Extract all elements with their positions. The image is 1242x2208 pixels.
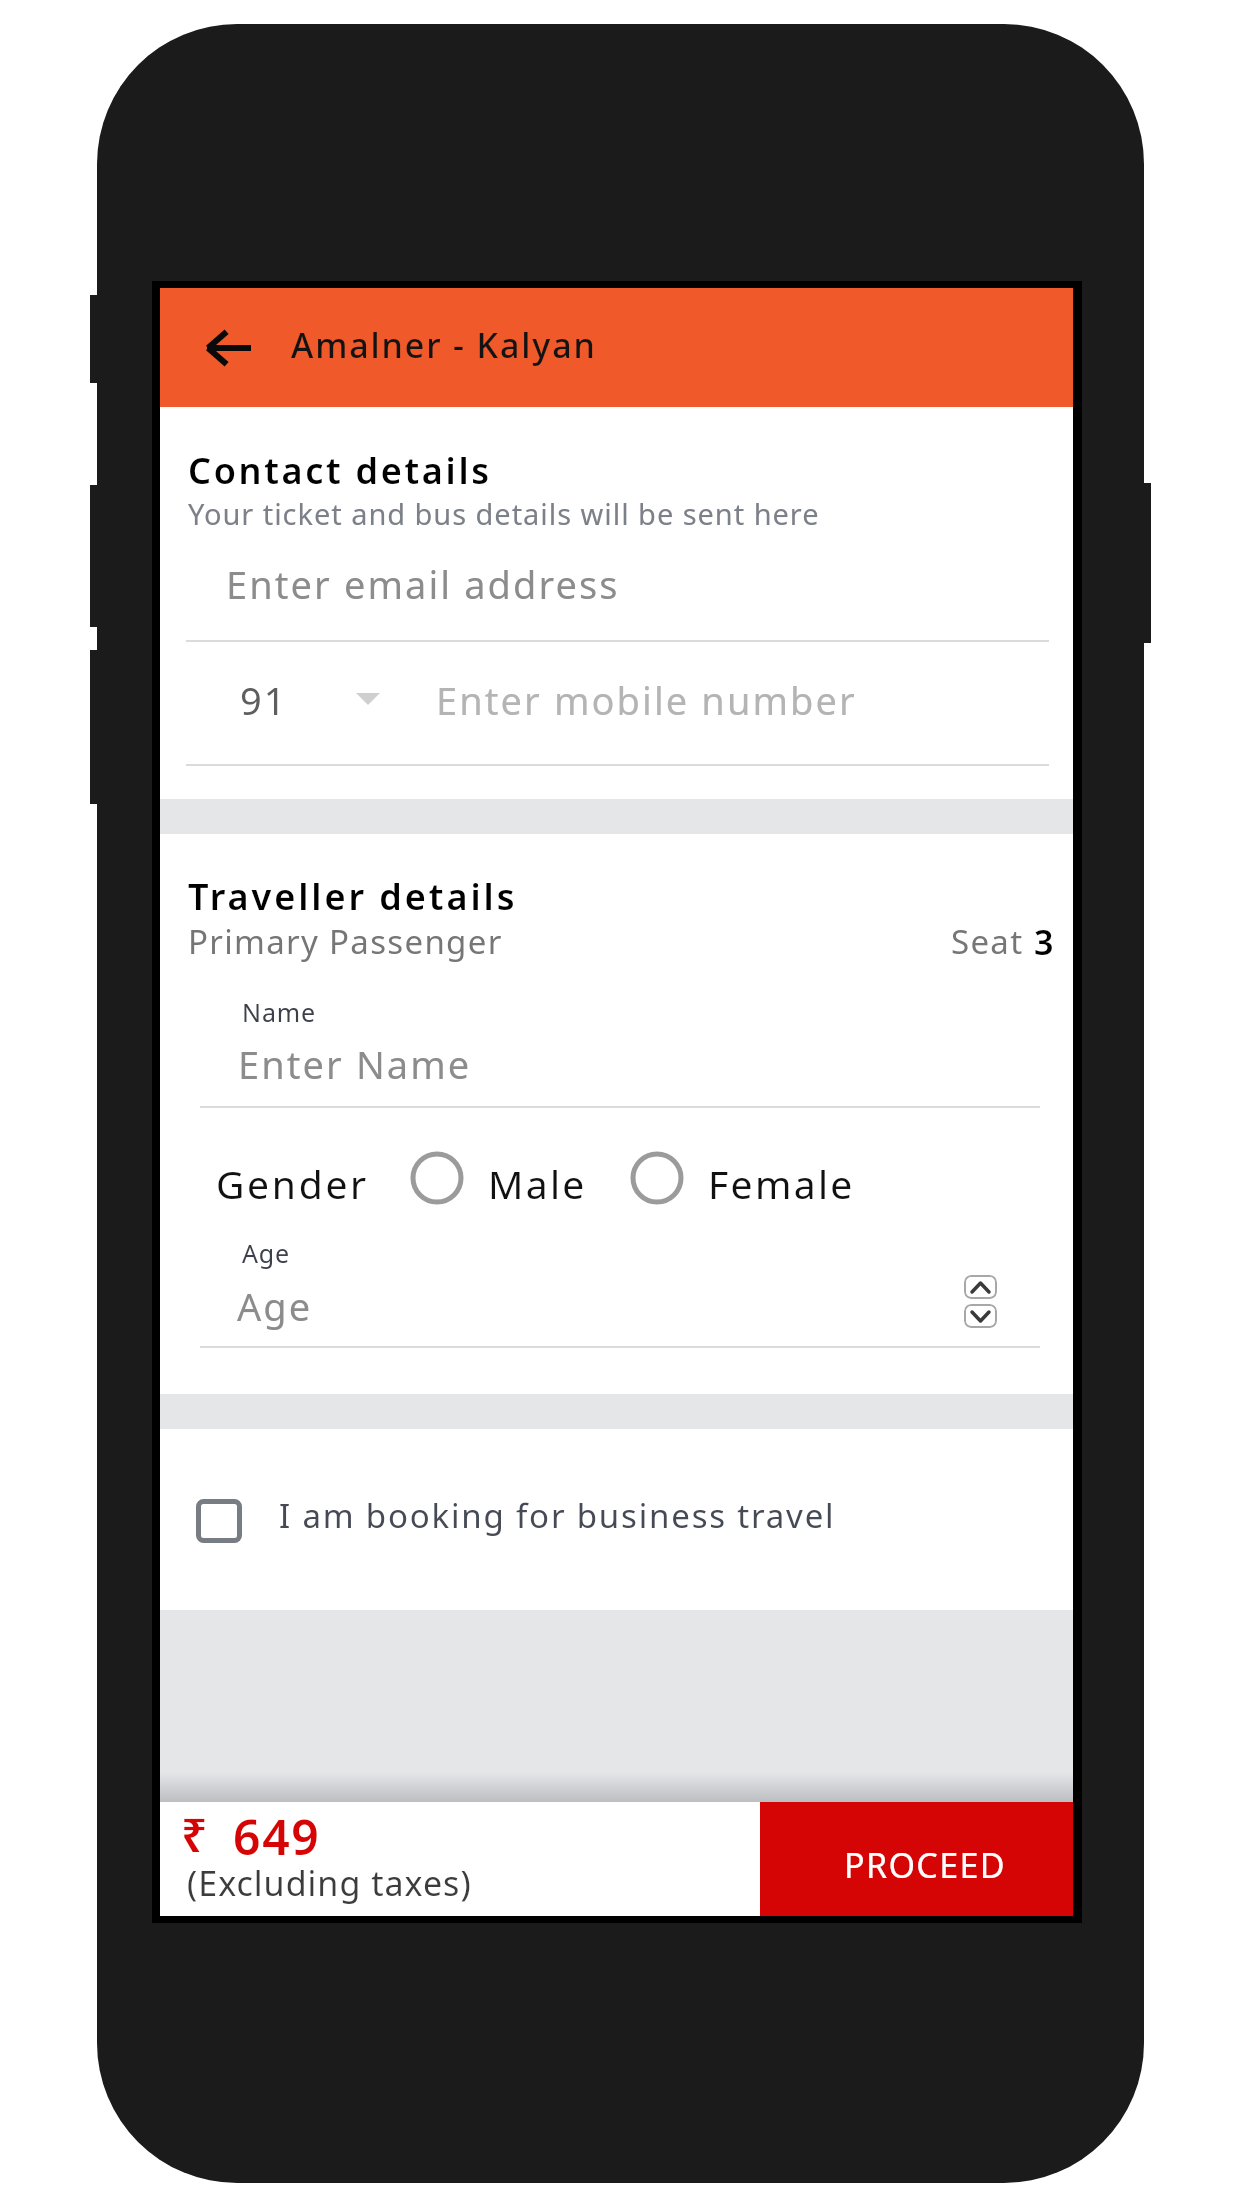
button[interactable]: Age bbox=[200, 1230, 1040, 1348]
staticText: PROCEED bbox=[844, 1842, 1006, 1888]
button[interactable]: Male bbox=[409, 1150, 465, 1206]
button[interactable]: Back bbox=[196, 316, 260, 380]
button[interactable]: Increase age bbox=[964, 1275, 997, 1299]
staticText: Enter Name bbox=[238, 1038, 472, 1090]
staticText: Traveller details bbox=[188, 872, 518, 921]
staticText: (Excluding taxes) bbox=[187, 1860, 472, 1906]
button[interactable]: Female bbox=[629, 1150, 685, 1206]
staticText: Name bbox=[242, 995, 317, 1029]
staticText: Seat bbox=[951, 919, 1034, 964]
staticText: Your ticket and bus details will be sent… bbox=[188, 494, 820, 533]
button[interactable]: PROCEED bbox=[760, 1802, 1073, 1916]
staticText: Contact details bbox=[188, 446, 492, 495]
staticText: 91 bbox=[240, 674, 288, 726]
staticText: Male bbox=[488, 1157, 587, 1210]
staticText: Age bbox=[242, 1236, 291, 1270]
staticText: Age bbox=[237, 1280, 313, 1332]
staticText: I am booking for business travel bbox=[279, 1493, 836, 1538]
button[interactable]: Name bbox=[200, 988, 1040, 1108]
staticText: 649 bbox=[233, 1804, 321, 1869]
staticText: Enter email address bbox=[226, 558, 620, 610]
staticText: Primary Passenger bbox=[188, 919, 503, 964]
button[interactable]: Enter email address bbox=[186, 544, 1049, 642]
staticText: Female bbox=[708, 1157, 855, 1210]
staticText: Gender bbox=[216, 1157, 369, 1210]
staticText: 3 bbox=[1034, 919, 1055, 965]
staticText: Enter mobile number bbox=[436, 674, 857, 726]
button[interactable]: 91 bbox=[186, 656, 1049, 766]
staticText: Amalner - Kalyan bbox=[291, 322, 597, 368]
staticText: ₹ bbox=[181, 1803, 208, 1866]
button[interactable]: I am booking for business travel bbox=[160, 1429, 1073, 1610]
button[interactable]: Decrease age bbox=[964, 1304, 997, 1328]
